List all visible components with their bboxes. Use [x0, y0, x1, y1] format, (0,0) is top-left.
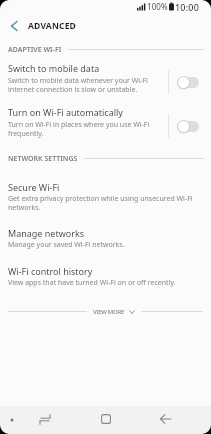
staticText: ADVANCED: [28, 20, 77, 32]
button[interactable]: [177, 120, 199, 133]
staticText: Turn on Wi-Fi in places where you use Wi…: [8, 120, 150, 138]
button[interactable]: Turn on Wi-Fi automatically: [0, 104, 211, 148]
button[interactable]: [31, 405, 59, 433]
button[interactable]: [92, 405, 120, 433]
button[interactable]: VIEW MORE: [8, 295, 203, 328]
button[interactable]: [11, 21, 17, 31]
button[interactable]: [177, 76, 199, 89]
staticText: Turn on Wi-Fi automatically: [8, 106, 123, 118]
staticText: Get extra privacy protection while using…: [8, 194, 193, 212]
staticText: Manage networks: [8, 227, 85, 239]
button[interactable]: ADVANCED: [0, 14, 211, 38]
staticText: Manage your saved Wi-Fi networks.: [8, 240, 125, 250]
staticText: Switch to mobile data: [8, 62, 100, 74]
button[interactable]: [152, 405, 180, 433]
staticText: Switch to mobile data whenever your Wi-F…: [8, 76, 148, 94]
staticText: View apps that have turned Wi-Fi on or o…: [8, 278, 176, 288]
button[interactable]: Switch to mobile data: [0, 60, 211, 104]
button[interactable]: Wi-Fi control history: [8, 265, 211, 292]
button[interactable]: Secure Wi-Fi: [8, 181, 211, 216]
staticText: 10:00: [175, 1, 200, 13]
staticText: NETWORK SETTINGS: [8, 154, 78, 164]
staticText: VIEW MORE: [93, 308, 125, 316]
staticText: 100%: [147, 1, 168, 12]
button[interactable]: Manage networks: [8, 227, 211, 254]
staticText: ADAPTIVE WI-FI: [8, 45, 62, 55]
staticText: Secure Wi-Fi: [8, 181, 60, 193]
staticText: Wi-Fi control history: [8, 265, 93, 277]
